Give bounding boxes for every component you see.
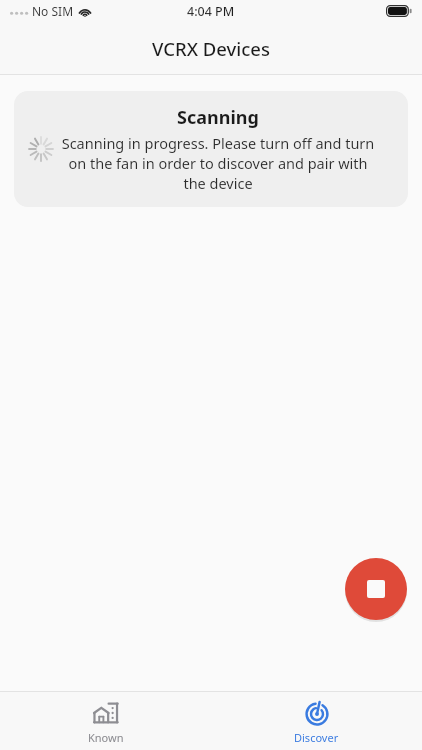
- staticText: Discover: [294, 730, 339, 745]
- staticText: Scanning in progress. Please turn off an…: [58, 133, 378, 193]
- button[interactable]: Scanning: [14, 91, 408, 207]
- staticText: Scanning: [177, 105, 259, 130]
- button[interactable]: Discover: [211, 694, 422, 749]
- staticText: No SIM: [32, 3, 74, 19]
- staticText: 4:04 PM: [187, 3, 235, 20]
- staticText: Known: [88, 730, 124, 745]
- button[interactable]: Known: [0, 694, 211, 749]
- button[interactable]: Stop scanning: [345, 558, 407, 620]
- staticText: VCRX Devices: [152, 36, 270, 61]
